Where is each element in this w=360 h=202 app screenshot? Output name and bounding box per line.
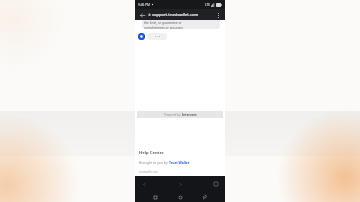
staticText: LTE [205,3,210,7]
button[interactable]: Tabs [212,180,220,188]
button[interactable]: the limit, or guarantee or [142,20,220,29]
staticText: trustwallet.com [139,170,158,174]
button[interactable]: Next [176,180,184,188]
staticText: support.trustwallet.com [152,12,199,17]
button[interactable]: Home [175,192,185,202]
staticText: Powered by [164,113,182,117]
staticText: completeness or accuracy. [144,26,184,29]
button[interactable]: Powered by [137,111,223,118]
staticText: Help Center [139,150,164,156]
staticText: Intercom [182,113,197,117]
button[interactable]: Back [200,192,210,202]
staticText: 9:46 PM [138,3,150,7]
staticText: the limit, or guarantee or [144,21,182,25]
button[interactable]: Back [138,11,146,19]
button[interactable]: Trust Wallet [169,160,190,165]
staticText: Trust Wallet [169,160,190,165]
staticText: Brought to you by [139,160,169,165]
button[interactable]: support.trustwallet.com [152,12,214,17]
button[interactable]: More options [214,11,222,19]
button[interactable]: Recent apps [150,192,160,202]
button[interactable]: Previous [140,180,148,188]
button[interactable] [147,33,167,40]
